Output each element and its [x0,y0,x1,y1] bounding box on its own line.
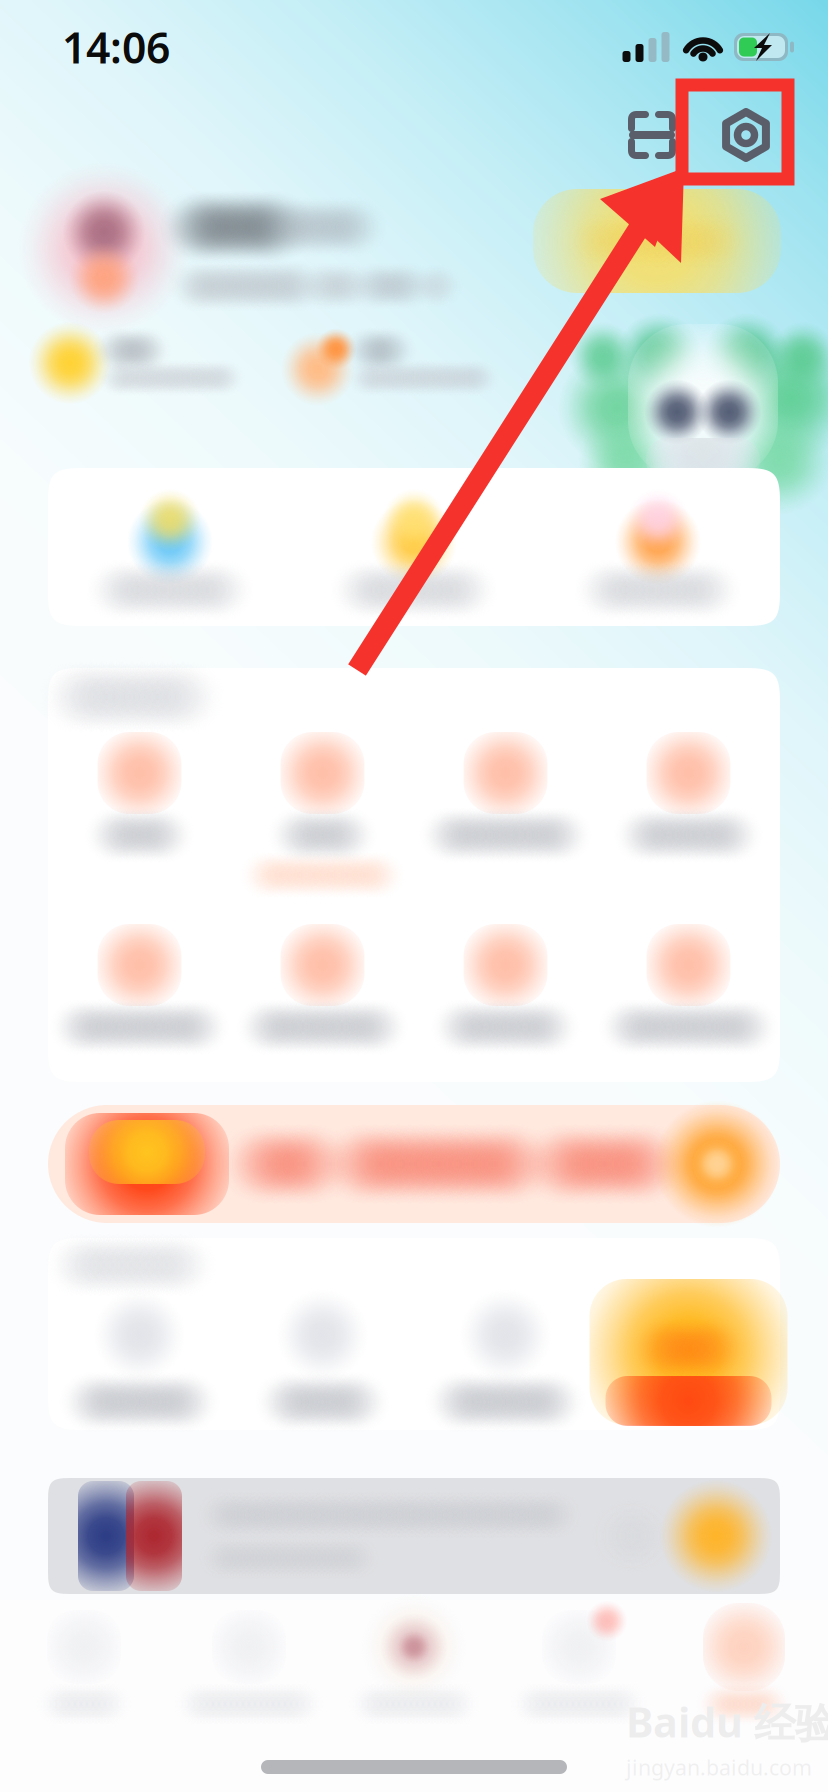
button[interactable]: Tab [661,1612,826,1714]
button[interactable]: Advertisement [48,1478,780,1594]
button[interactable]: Promotion [48,1105,780,1223]
button[interactable]: Shortcut [536,468,780,626]
button[interactable]: Tool [48,1304,231,1416]
button[interactable]: Service [597,928,780,1068]
button[interactable]: Account name [190,210,490,298]
button[interactable]: Tab [331,1612,496,1714]
button[interactable]: Tool [231,1304,414,1416]
button[interactable]: Profile photo [46,190,162,306]
button[interactable]: Service [231,736,414,876]
button[interactable]: Member benefits [543,199,771,283]
button[interactable]: Tool [414,1304,597,1416]
staticText: 14:06 [62,19,170,75]
button[interactable]: Service [48,928,231,1068]
button[interactable]: Service [414,736,597,876]
button[interactable]: Service [231,928,414,1068]
button[interactable]: Service [597,736,780,876]
button[interactable]: Tab [166,1612,331,1714]
button[interactable]: Shortcut [48,468,292,626]
button[interactable]: Scan [612,96,692,174]
button[interactable]: Settings [706,96,786,174]
button[interactable]: Shortcut [292,468,536,626]
button[interactable]: Tab [496,1612,661,1714]
button[interactable]: Featured offer [597,1294,780,1426]
staticText: jingyan.baidu.com [626,1753,812,1781]
button[interactable]: Service [48,736,231,876]
button[interactable]: Tab [1,1612,166,1714]
button[interactable]: Coupons [292,335,484,391]
button[interactable]: Points [42,335,230,391]
button[interactable]: Service [414,928,597,1068]
staticText: Baidu 经验 [626,1694,828,1749]
